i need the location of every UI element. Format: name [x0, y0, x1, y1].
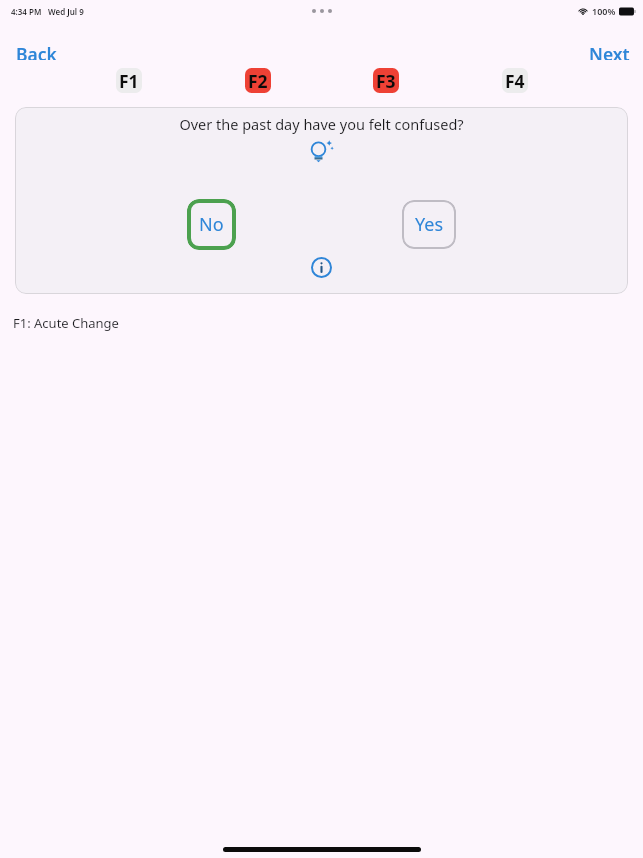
staticText: Back — [16, 42, 57, 60]
staticText: F1: Acute Change — [13, 314, 119, 332]
button[interactable]: Back — [0, 37, 73, 65]
button[interactable]: Hint — [303, 139, 333, 165]
staticText: Wed Jul 9 — [48, 6, 84, 17]
button[interactable]: Info — [311, 257, 332, 278]
button[interactable]: F2 — [245, 68, 271, 93]
staticText: 100% — [592, 5, 616, 17]
staticText: Over the past day have you felt confused… — [179, 114, 464, 134]
staticText: Next — [589, 42, 630, 60]
staticText: F2 — [248, 69, 268, 93]
button[interactable]: Next — [574, 37, 643, 65]
staticText: Yes — [415, 212, 444, 237]
button[interactable]: F1 — [116, 68, 142, 93]
staticText: F1 — [119, 69, 139, 93]
staticText: No — [199, 212, 224, 237]
button[interactable]: No — [187, 199, 236, 250]
button[interactable]: F3 — [373, 68, 399, 93]
button[interactable]: Yes — [402, 200, 456, 249]
button[interactable]: F4 — [502, 68, 528, 93]
staticText: 4:34 PM — [11, 6, 42, 17]
staticText: F3 — [376, 69, 396, 93]
staticText: F4 — [505, 69, 525, 93]
